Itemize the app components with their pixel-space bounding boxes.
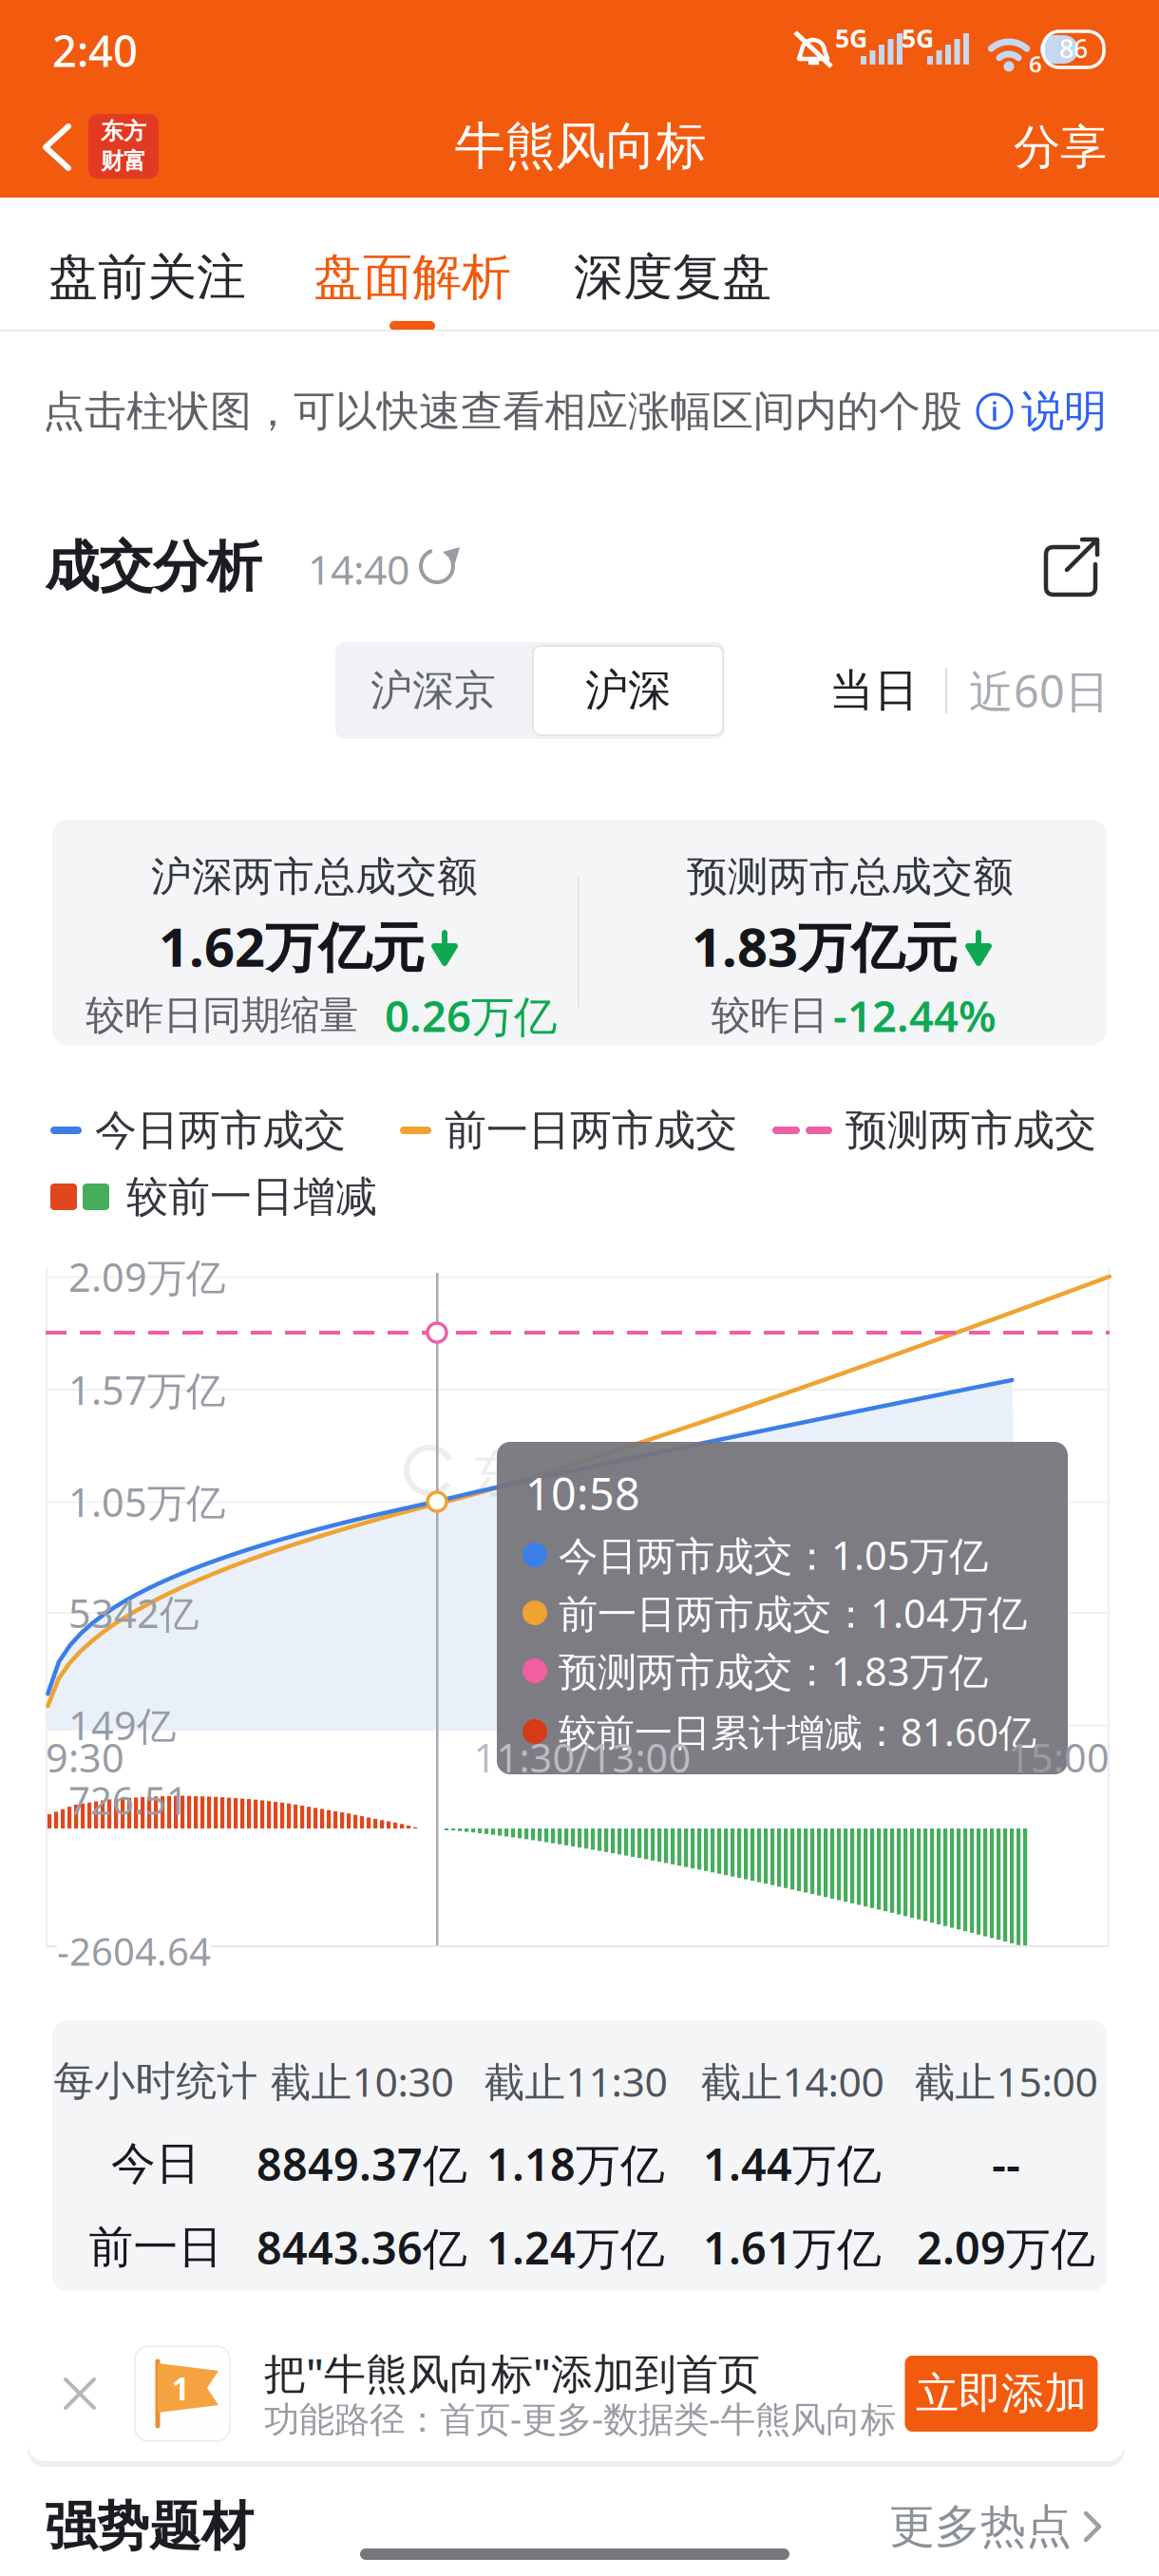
staticText: 8443.36亿 <box>256 2218 467 2277</box>
staticText: 较前一日累计增减：81.60亿 <box>559 1706 1036 1757</box>
staticText: 较昨日 <box>711 991 828 1040</box>
staticText: 1.44万亿 <box>703 2134 882 2193</box>
staticText: 15:00 <box>1008 1731 1110 1783</box>
button[interactable]: 东方 <box>88 114 159 179</box>
staticText: -- <box>992 2134 1020 2193</box>
button[interactable]: 深度复盘 <box>574 247 771 331</box>
staticText: 预测两市成交 <box>845 1105 1096 1156</box>
button[interactable]: 分享 <box>1014 118 1107 176</box>
staticText: 9:30 <box>46 1731 124 1783</box>
button[interactable] <box>1042 538 1101 597</box>
button[interactable]: 沪深 <box>533 646 723 735</box>
staticText: 财富 <box>101 147 146 175</box>
staticText: 今日两市成交：1.05万亿 <box>559 1529 988 1581</box>
staticText: 8849.37亿 <box>256 2134 467 2193</box>
staticText: 预测两市成交：1.83万亿 <box>559 1645 988 1697</box>
button[interactable]: 沪深京 <box>338 645 528 736</box>
staticText: 2.09万亿 <box>68 1251 225 1303</box>
staticText: 点击柱状图，可以快速查看相应涨幅区间内的个股 <box>43 386 962 437</box>
staticText: -2604.64 <box>57 1926 211 1976</box>
staticText: 10:58 <box>525 1464 640 1523</box>
staticText: 成交分析 <box>45 534 261 600</box>
staticText: 今日 <box>111 2137 200 2191</box>
staticText: 86 <box>1059 32 1088 65</box>
button[interactable]: 当日 <box>829 663 919 718</box>
staticText: 盘面解析 <box>313 247 511 308</box>
staticText: 截止11:30 <box>484 2054 667 2108</box>
staticText: 2:40 <box>52 22 138 79</box>
staticText: 726.51 <box>68 1775 188 1825</box>
staticText: 沪深 <box>585 664 671 717</box>
staticText: 1 <box>171 2367 190 2409</box>
staticText: 前一日两市成交：1.04万亿 <box>559 1587 1027 1639</box>
staticText: 1.05万亿 <box>68 1476 225 1528</box>
staticText: 截止10:30 <box>270 2054 454 2108</box>
staticText: 功能路径：首页-更多-数据类-牛熊风向标 <box>264 2395 896 2442</box>
button[interactable]: 盘前关注 <box>48 247 246 331</box>
staticText: 5G <box>902 21 934 55</box>
staticText: 盘前关注 <box>48 247 246 308</box>
staticText: 牛熊风向标 <box>455 115 706 177</box>
staticText: 6 <box>1029 49 1042 79</box>
button[interactable]: 盘面解析 <box>313 247 511 331</box>
staticText: 东方财富 <box>471 1444 669 1505</box>
staticText: 前一日两市成交 <box>445 1105 737 1156</box>
staticText: 分享 <box>1014 118 1107 176</box>
staticText: 5342亿 <box>68 1587 199 1639</box>
staticText: 5G <box>835 21 867 55</box>
staticText: 截止14:00 <box>701 2054 884 2108</box>
staticText: 强势题材 <box>45 2495 254 2558</box>
button[interactable] <box>62 2376 98 2412</box>
staticText: 沪深京 <box>370 665 496 716</box>
staticText: 更多热点 <box>889 2499 1072 2555</box>
staticText: 1.62万亿元 <box>159 911 425 981</box>
staticText: 每小时统计 <box>54 2056 258 2106</box>
staticText: 截止15:00 <box>914 2054 1098 2108</box>
staticText: 说明 <box>1021 385 1107 438</box>
staticText: 0.26万亿 <box>385 987 557 1044</box>
staticText: -12.44% <box>833 987 997 1044</box>
button[interactable]: i <box>978 385 1107 438</box>
staticText: 当日 <box>829 663 919 718</box>
staticText: 14:40 <box>308 542 409 596</box>
staticText: 今日两市成交 <box>95 1105 346 1156</box>
staticText: 较前一日增减 <box>126 1171 377 1222</box>
staticText: 前一日 <box>89 2220 223 2275</box>
staticText: 把"牛熊风向标"添加到首页 <box>264 2345 760 2400</box>
staticText: 1.57万亿 <box>68 1364 225 1416</box>
staticText: 立即添加 <box>916 2367 1087 2420</box>
staticText: 较昨日同期缩量 <box>85 991 358 1040</box>
staticText: 沪深两市总成交额 <box>151 852 478 902</box>
staticText: 东方 <box>101 117 146 145</box>
staticText: 2.09万亿 <box>917 2218 1095 2277</box>
staticText: 1.24万亿 <box>486 2218 665 2277</box>
staticText: 1.83万亿元 <box>692 911 958 981</box>
button[interactable]: 更多热点 <box>889 2499 1102 2555</box>
button[interactable] <box>40 123 74 172</box>
staticText: 11:30/13:00 <box>474 1731 691 1783</box>
staticText: 1.18万亿 <box>486 2134 665 2193</box>
button[interactable]: 立即添加 <box>905 2356 1098 2432</box>
staticText: i <box>991 394 998 428</box>
button[interactable]: 近60日 <box>969 661 1110 720</box>
staticText: 预测两市总成交额 <box>687 852 1014 902</box>
staticText: 深度复盘 <box>574 247 771 308</box>
staticText: 149亿 <box>68 1699 176 1751</box>
staticText: 近60日 <box>969 661 1110 720</box>
staticText: 1.61万亿 <box>703 2218 882 2277</box>
